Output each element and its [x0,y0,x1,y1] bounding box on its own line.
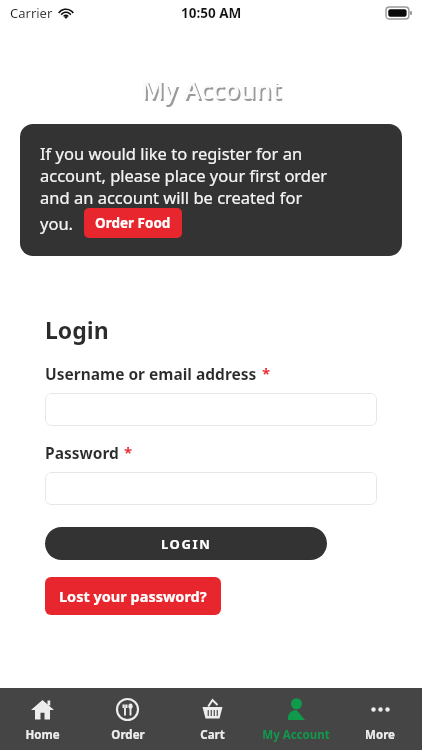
button[interactable]: Home [0,688,85,750]
staticText: * [262,363,271,383]
staticText: Order Food [95,214,171,232]
staticText: you. [40,212,74,234]
staticText: Cart [200,727,225,743]
staticText: Username or email address [45,363,257,384]
button[interactable]: My Account [254,688,338,750]
staticText: Password [45,442,119,463]
staticText: Carrier [10,4,53,22]
staticText: 10:50 AM [181,4,242,22]
staticText: Login [45,314,109,345]
button[interactable]: LOGIN [45,527,327,560]
staticText: Home [25,727,60,743]
button[interactable]: Order Food [84,208,182,238]
staticText: My Account [141,72,281,106]
button[interactable]: Order [85,688,170,750]
button[interactable]: Lost your password? [45,577,221,615]
staticText: Lost your password? [59,586,207,606]
staticText: If you would like to register for an [40,142,303,164]
staticText: account, please place your first order [40,164,328,186]
button[interactable]: More [338,688,422,750]
staticText: and an account will be created for [40,186,303,208]
button[interactable] [45,472,377,505]
staticText: LOGIN [161,535,212,553]
button[interactable] [45,393,377,426]
staticText: Order [111,727,145,743]
staticText: More [365,727,395,743]
staticText: * [124,442,133,462]
button[interactable]: Cart [170,688,254,750]
staticText: My Account [143,74,283,108]
staticText: My Account [262,727,330,743]
